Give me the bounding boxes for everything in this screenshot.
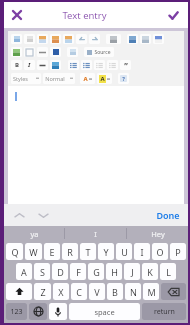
button[interactable] xyxy=(68,60,79,70)
button[interactable] xyxy=(24,47,35,57)
staticText: B xyxy=(15,61,19,69)
staticText: Hey xyxy=(151,229,165,239)
button[interactable] xyxy=(50,60,61,70)
button[interactable]: K xyxy=(142,263,158,280)
staticText: A xyxy=(21,266,27,278)
button[interactable]: Dictate xyxy=(49,303,67,320)
button[interactable] xyxy=(76,34,87,44)
button[interactable] xyxy=(63,34,74,44)
button[interactable]: I xyxy=(134,243,150,260)
staticText: N xyxy=(130,286,137,298)
button[interactable] xyxy=(8,86,184,202)
button[interactable]: A xyxy=(97,73,112,84)
button[interactable]: O xyxy=(152,243,168,260)
button[interactable]: B xyxy=(107,283,123,300)
button[interactable]: Previous field xyxy=(12,208,26,222)
button[interactable]: T xyxy=(80,243,96,260)
button[interactable]: Z xyxy=(34,283,51,300)
button[interactable] xyxy=(107,60,118,70)
staticText: K xyxy=(147,266,153,278)
button[interactable]: I xyxy=(65,226,126,241)
staticText: T xyxy=(85,246,91,258)
button[interactable]: Done xyxy=(156,209,180,221)
staticText: C xyxy=(76,286,82,298)
button[interactable] xyxy=(37,34,48,44)
staticText: Normal xyxy=(45,75,65,82)
staticText: X xyxy=(58,286,64,298)
button[interactable] xyxy=(37,47,48,57)
staticText: Styles xyxy=(13,75,28,82)
button[interactable]: S xyxy=(34,263,50,280)
button[interactable] xyxy=(89,34,100,44)
button[interactable]: D xyxy=(52,263,68,280)
button[interactable]: X xyxy=(53,283,69,300)
button[interactable]: W xyxy=(25,243,42,260)
button[interactable] xyxy=(106,34,121,44)
button[interactable]: Close xyxy=(9,7,25,23)
button[interactable]: Next field xyxy=(36,208,50,222)
button[interactable] xyxy=(81,60,92,70)
button[interactable]: Normal xyxy=(43,73,75,84)
button[interactable]: E xyxy=(44,243,60,260)
staticText: W xyxy=(29,246,38,258)
button[interactable] xyxy=(94,60,105,70)
button[interactable]: I xyxy=(24,60,35,70)
button[interactable] xyxy=(50,34,61,44)
button[interactable]: ? xyxy=(118,73,129,84)
staticText: U xyxy=(121,246,128,258)
button[interactable] xyxy=(127,34,138,44)
button[interactable]: R xyxy=(62,243,78,260)
button[interactable]: F xyxy=(70,263,86,280)
staticText: ? xyxy=(122,75,125,82)
button[interactable] xyxy=(37,60,48,70)
button[interactable]: Source xyxy=(84,47,114,57)
button[interactable]: Backspace xyxy=(161,283,186,300)
button[interactable]: 123 xyxy=(6,303,27,320)
button[interactable] xyxy=(11,34,22,44)
button[interactable]: Shift xyxy=(6,283,32,300)
button[interactable]: M xyxy=(143,283,159,300)
button[interactable] xyxy=(140,34,151,44)
button[interactable]: Y xyxy=(98,243,114,260)
button[interactable] xyxy=(153,34,164,44)
button[interactable]: H xyxy=(106,263,122,280)
button[interactable]: J xyxy=(124,263,140,280)
button[interactable]: G xyxy=(88,263,104,280)
staticText: Done xyxy=(156,209,180,221)
staticText: F xyxy=(76,266,81,278)
button[interactable]: U xyxy=(116,243,132,260)
button[interactable]: ” xyxy=(120,60,131,70)
staticText: L xyxy=(166,266,171,278)
button[interactable]: ya xyxy=(4,226,64,241)
staticText: ” xyxy=(124,60,128,70)
button[interactable]: C xyxy=(71,283,87,300)
button[interactable] xyxy=(50,47,61,57)
button[interactable] xyxy=(67,47,78,57)
button[interactable]: P xyxy=(170,243,186,260)
button[interactable]: Styles xyxy=(11,73,41,84)
button[interactable]: A xyxy=(16,263,32,280)
staticText: D xyxy=(57,266,64,278)
staticText: 123 xyxy=(10,307,23,317)
button[interactable]: Q xyxy=(6,243,23,260)
staticText: I xyxy=(140,246,144,258)
button[interactable]: Confirm xyxy=(165,7,181,23)
button[interactable] xyxy=(11,47,22,57)
staticText: V xyxy=(94,286,100,298)
button[interactable]: space xyxy=(69,303,140,320)
staticText: B xyxy=(112,286,118,298)
button[interactable]: Change keyboard xyxy=(29,303,47,320)
button[interactable]: B xyxy=(11,60,22,70)
button[interactable]: L xyxy=(160,263,176,280)
staticText: space xyxy=(94,307,115,317)
button[interactable]: V xyxy=(89,283,105,300)
button[interactable]: N xyxy=(125,283,141,300)
staticText: S xyxy=(40,266,45,278)
staticText: E xyxy=(49,246,55,258)
button[interactable] xyxy=(24,34,35,44)
button[interactable]: return xyxy=(142,303,186,320)
button[interactable]: A xyxy=(80,73,95,84)
staticText: Y xyxy=(103,246,109,258)
button[interactable]: Hey xyxy=(127,226,188,241)
staticText: A xyxy=(83,75,88,83)
